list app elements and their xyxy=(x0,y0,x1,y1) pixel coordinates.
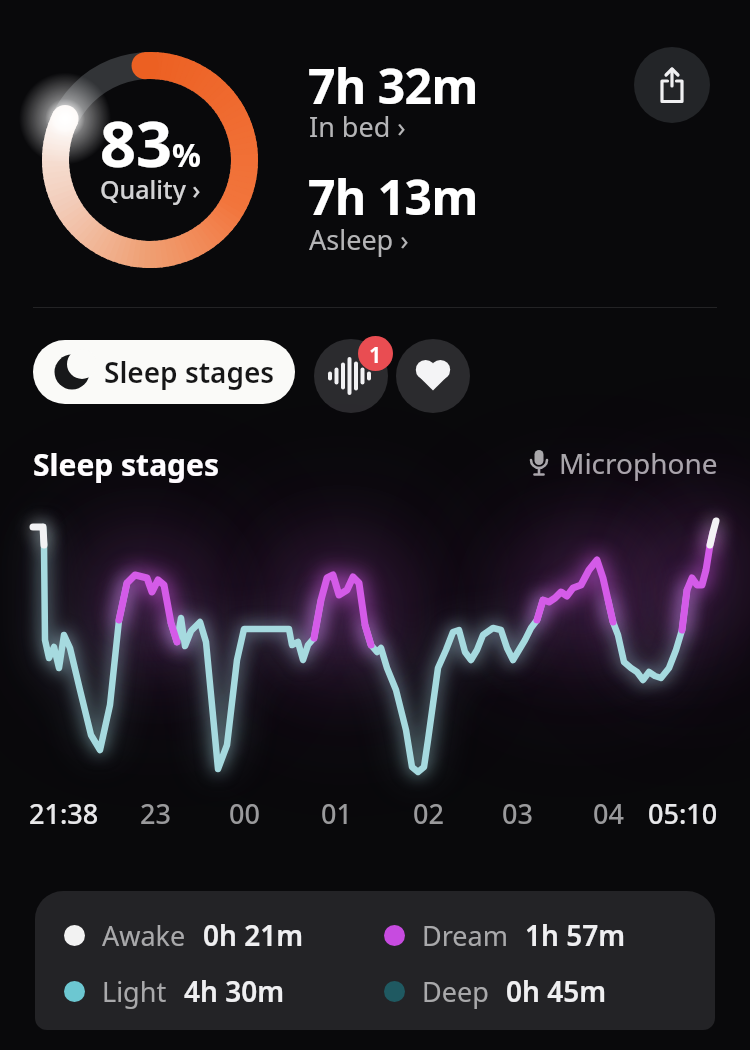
staticText: 1 xyxy=(369,339,382,369)
staticText: 21:38 xyxy=(29,795,99,832)
staticText: 83% xyxy=(100,100,201,186)
staticText: 7h 32m xyxy=(308,53,478,118)
staticText: 00 xyxy=(229,795,260,832)
staticText: 02 xyxy=(413,795,444,832)
button[interactable]: Sleep stages xyxy=(33,340,295,404)
staticText: Awake xyxy=(102,917,186,954)
button[interactable] xyxy=(396,339,470,413)
button[interactable]: Asleep › xyxy=(309,221,409,258)
staticText: 04 xyxy=(593,795,624,832)
button[interactable]: 83% xyxy=(35,45,265,275)
staticText: Deep xyxy=(422,973,489,1010)
button[interactable]: Microphone xyxy=(528,444,718,482)
staticText: Quality › xyxy=(100,172,201,206)
staticText: 7h 13m xyxy=(308,164,478,229)
staticText: 05:10 xyxy=(648,795,718,832)
staticText: Light xyxy=(102,973,167,1010)
staticText: 01 xyxy=(321,795,352,832)
button[interactable] xyxy=(314,339,388,413)
staticText: 03 xyxy=(502,795,533,832)
staticText: Sleep stages xyxy=(33,444,220,485)
staticText: Microphone xyxy=(559,444,718,482)
button[interactable]: In bed › xyxy=(309,108,406,145)
staticText: Dream xyxy=(422,917,508,954)
staticText: 23 xyxy=(140,795,171,832)
staticText: 0h 21m xyxy=(203,916,304,954)
staticText: 1h 57m xyxy=(525,916,626,954)
staticText: Sleep stages xyxy=(104,353,275,391)
staticText: 0h 45m xyxy=(506,972,607,1010)
button[interactable] xyxy=(634,47,710,123)
staticText: 4h 30m xyxy=(184,972,285,1010)
